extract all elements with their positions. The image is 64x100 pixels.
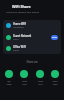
staticText: Guest Network	[13, 34, 32, 38]
button[interactable]: Guest Network	[3, 32, 61, 43]
staticText: Share your network with friends	[6, 11, 39, 14]
staticText: WiFi Share	[12, 4, 31, 9]
button[interactable]: Home WiFi	[3, 20, 61, 31]
staticText: Copy Link	[22, 80, 27, 86]
button[interactable]: QR Code	[5, 70, 13, 78]
staticText: WPA2	[13, 38, 19, 41]
staticText: Connected	[13, 26, 24, 29]
staticText: Share via	[0, 60, 64, 64]
button[interactable]: Office WiFi	[3, 43, 61, 54]
staticText: Send SMS	[38, 80, 43, 86]
button[interactable]: Send	[51, 35, 58, 40]
staticText: QR Code	[6, 80, 12, 86]
staticText: More Apps	[52, 80, 58, 86]
staticText: Home WiFi	[13, 22, 27, 26]
button[interactable]: Copy Link	[20, 70, 28, 78]
button[interactable]: More Apps	[51, 70, 59, 78]
staticText: Send	[52, 36, 57, 39]
staticText: Office WiFi	[13, 45, 26, 49]
button[interactable]: Send SMS	[36, 70, 44, 78]
staticText: Saved	[13, 49, 19, 52]
